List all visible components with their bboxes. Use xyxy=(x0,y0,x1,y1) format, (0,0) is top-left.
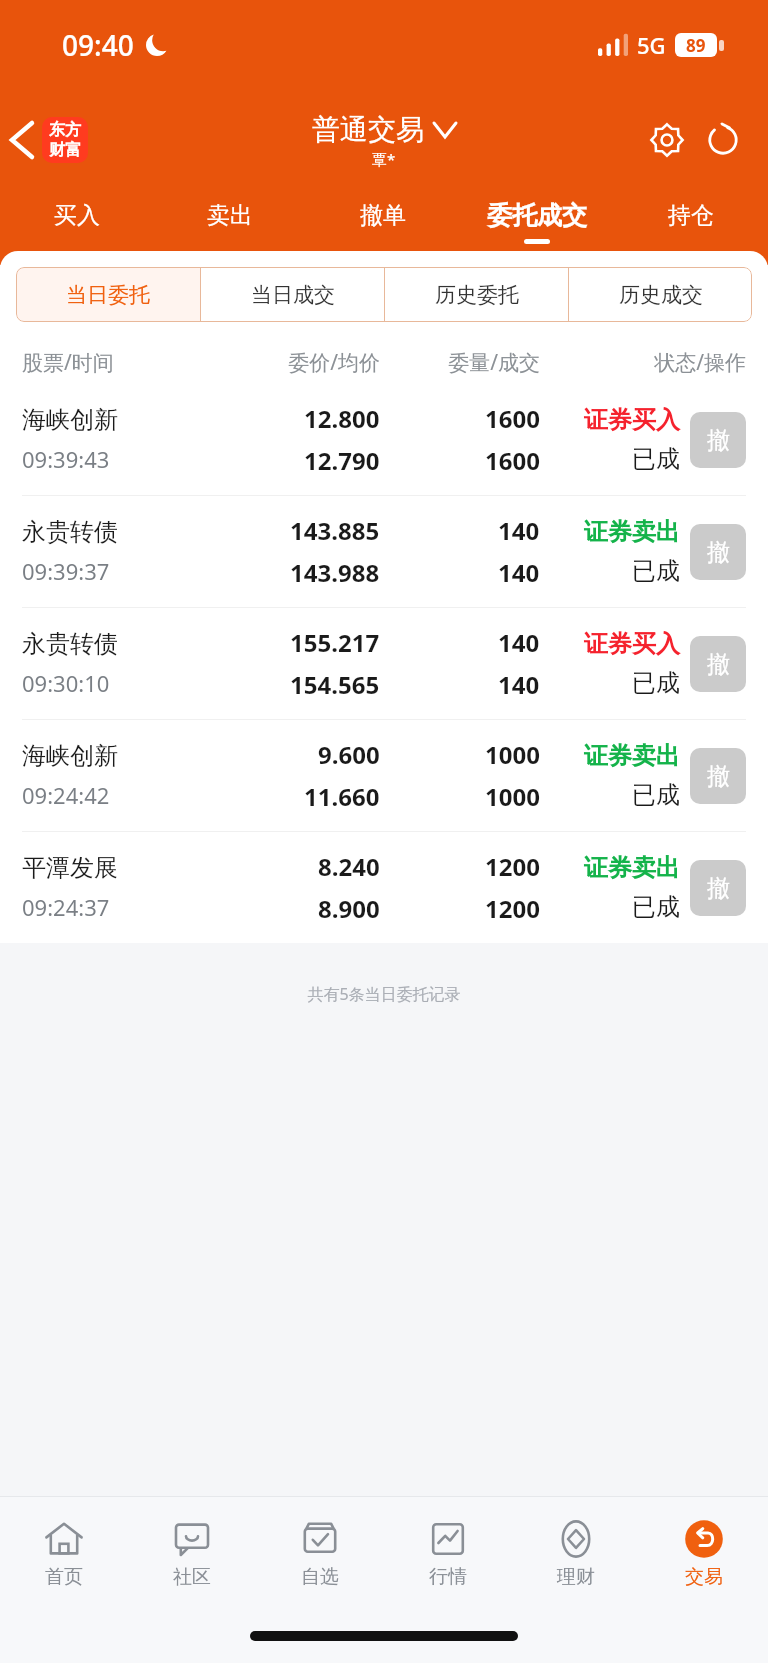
staticText: 09:40 xyxy=(62,26,134,64)
button[interactable]: 平潭发展 xyxy=(0,832,768,943)
staticText: 海峡创新 xyxy=(22,405,118,435)
button[interactable]: 理财 xyxy=(512,1497,640,1609)
staticText: 撤 xyxy=(707,426,730,455)
staticText: 持仓 xyxy=(668,201,714,230)
staticText: 143.885 xyxy=(290,514,380,547)
button[interactable]: 委托成交 xyxy=(460,186,614,258)
staticText: 卖出 xyxy=(207,201,253,230)
staticText: 09:30:10 xyxy=(22,668,110,698)
staticText: 撤单 xyxy=(360,201,406,230)
staticText: 89 xyxy=(686,34,706,57)
staticText: 普通交易 xyxy=(312,112,424,147)
staticText: 12.790 xyxy=(304,444,380,477)
staticText: 首页 xyxy=(45,1565,83,1589)
staticText: 状态/操作 xyxy=(540,348,746,377)
staticText: 撤 xyxy=(707,650,730,679)
staticText: 140 xyxy=(498,556,540,589)
staticText: 140 xyxy=(498,514,540,547)
button[interactable]: 行情 xyxy=(384,1497,512,1609)
staticText: 永贵转债 xyxy=(22,629,118,659)
button[interactable]: 历史成交 xyxy=(569,267,752,322)
staticText: 140 xyxy=(498,626,540,659)
staticText: 东方 xyxy=(49,120,81,140)
staticText: 股票/时间 xyxy=(22,348,197,377)
button[interactable]: 买入 xyxy=(0,186,153,258)
staticText: 140 xyxy=(498,668,540,701)
staticText: 8.240 xyxy=(318,850,380,883)
staticText: 已成 xyxy=(632,444,680,474)
staticText: 09:39:43 xyxy=(22,444,110,474)
staticText: 证券卖出 xyxy=(584,741,680,771)
staticText: 委托成交 xyxy=(487,200,587,231)
button[interactable]: 持仓 xyxy=(614,186,768,258)
staticText: 理财 xyxy=(557,1565,595,1589)
staticText: 已成 xyxy=(632,780,680,810)
staticText: 09:24:42 xyxy=(22,780,110,810)
staticText: 证券买入 xyxy=(584,629,680,659)
button[interactable]: 撤 xyxy=(690,412,746,468)
staticText: 委量/成交 xyxy=(380,348,540,377)
staticText: 撤 xyxy=(707,874,730,903)
staticText: 撤 xyxy=(707,762,730,791)
staticText: 历史成交 xyxy=(619,282,703,308)
button[interactable]: 社区 xyxy=(128,1497,256,1609)
staticText: 已成 xyxy=(632,556,680,586)
staticText: 1600 xyxy=(485,444,540,477)
staticText: 155.217 xyxy=(290,626,380,659)
staticText: 当日委托 xyxy=(66,282,150,308)
staticText: 买入 xyxy=(54,201,100,230)
button[interactable]: 历史委托 xyxy=(385,267,568,322)
staticText: 09:24:37 xyxy=(22,892,110,922)
staticText: 海峡创新 xyxy=(22,741,118,771)
staticText: 9.600 xyxy=(318,738,380,771)
staticText: 当日成交 xyxy=(251,282,335,308)
button[interactable]: 永贵转债 xyxy=(0,608,768,719)
staticText: 覃* xyxy=(372,149,396,169)
staticText: 09:39:37 xyxy=(22,556,110,586)
button[interactable]: 当日成交 xyxy=(201,267,384,322)
button[interactable]: 首页 xyxy=(0,1497,128,1609)
staticText: 行情 xyxy=(429,1565,467,1589)
staticText: 永贵转债 xyxy=(22,517,118,547)
staticText: 交易 xyxy=(685,1565,723,1589)
button[interactable]: Back xyxy=(0,109,96,171)
button[interactable]: 交易 xyxy=(640,1497,768,1609)
staticText: 1000 xyxy=(485,780,540,813)
staticText: 1200 xyxy=(485,892,540,925)
staticText: 1000 xyxy=(485,738,540,771)
staticText: 154.565 xyxy=(290,668,380,701)
button[interactable]: 卖出 xyxy=(153,186,306,258)
staticText: 1600 xyxy=(485,402,540,435)
button[interactable]: 自选 xyxy=(256,1497,384,1609)
staticText: 委价/均价 xyxy=(197,348,380,377)
staticText: 1200 xyxy=(485,850,540,883)
staticText: 5G xyxy=(637,30,666,60)
staticText: 社区 xyxy=(173,1565,211,1589)
staticText: 历史委托 xyxy=(435,282,519,308)
staticText: 自选 xyxy=(301,1565,339,1589)
button[interactable]: 永贵转债 xyxy=(0,496,768,607)
staticText: 证券卖出 xyxy=(584,517,680,547)
button[interactable]: Refresh xyxy=(700,117,746,163)
staticText: 143.988 xyxy=(290,556,380,589)
staticText: 8.900 xyxy=(318,892,380,925)
button[interactable]: 撤 xyxy=(690,748,746,804)
staticText: 财富 xyxy=(49,140,81,160)
staticText: 11.660 xyxy=(304,780,380,813)
button[interactable]: 撤 xyxy=(690,524,746,580)
staticText: 12.800 xyxy=(304,402,380,435)
button[interactable]: 当日委托 xyxy=(16,267,200,322)
staticText: 已成 xyxy=(632,892,680,922)
staticText: 平潭发展 xyxy=(22,853,118,883)
button[interactable]: 撤单 xyxy=(306,186,460,258)
staticText: 撤 xyxy=(707,538,730,567)
staticText: 证券买入 xyxy=(584,405,680,435)
button[interactable]: 海峡创新 xyxy=(0,720,768,831)
button[interactable]: 撤 xyxy=(690,860,746,916)
button[interactable]: 普通交易 xyxy=(312,112,456,169)
staticText: 已成 xyxy=(632,668,680,698)
button[interactable]: 海峡创新 xyxy=(0,384,768,495)
button[interactable]: Settings xyxy=(644,117,690,163)
button[interactable]: 撤 xyxy=(690,636,746,692)
staticText: 证券卖出 xyxy=(584,853,680,883)
